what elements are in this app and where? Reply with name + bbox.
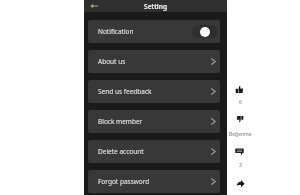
staticText: Beğenme bbox=[229, 131, 252, 138]
button[interactable]: About us bbox=[88, 50, 220, 73]
button[interactable]: Notification bbox=[88, 20, 220, 43]
button[interactable]: Back bbox=[88, 0, 100, 12]
staticText: 3 bbox=[239, 162, 242, 169]
staticText: Forgot password bbox=[98, 177, 150, 186]
staticText: About us bbox=[98, 57, 126, 66]
button[interactable]: Comment bbox=[235, 147, 244, 156]
staticText: 6 bbox=[239, 99, 242, 106]
staticText: Send us feedback bbox=[98, 87, 152, 96]
staticText: Setting bbox=[144, 2, 168, 11]
button[interactable]: Send us feedback bbox=[88, 80, 220, 103]
staticText: Notification bbox=[98, 27, 134, 36]
button[interactable]: Dislike bbox=[236, 115, 244, 123]
button[interactable]: Like bbox=[235, 85, 244, 94]
button[interactable]: Block member bbox=[88, 110, 220, 133]
button[interactable]: Forgot password bbox=[88, 170, 220, 193]
button[interactable] bbox=[192, 25, 218, 38]
button[interactable]: Share bbox=[236, 179, 245, 188]
staticText: Delete account bbox=[98, 147, 144, 156]
staticText: Block member bbox=[98, 117, 143, 126]
button[interactable]: Delete account bbox=[88, 140, 220, 163]
